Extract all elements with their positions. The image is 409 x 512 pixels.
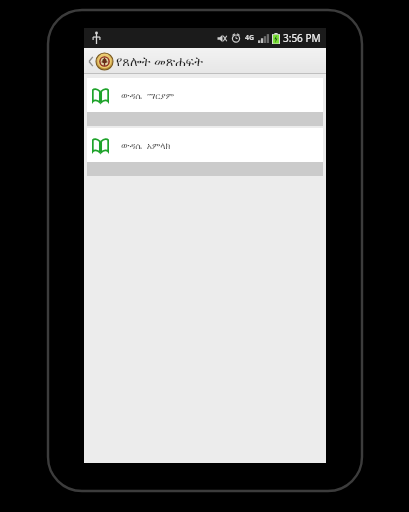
button[interactable]: Back (84, 48, 115, 74)
staticText: 3:56 PM (283, 31, 321, 45)
button[interactable]: ውዳሴ አምላክ (87, 128, 323, 162)
staticText: 4G (245, 33, 255, 43)
staticText: ውዳሴ አምላክ (121, 139, 171, 151)
staticText: የጸሎት መጽሐፍት (116, 52, 203, 70)
staticText: ውዳሴ ማርያም (121, 89, 175, 101)
button[interactable]: ውዳሴ ማርያም (87, 78, 323, 112)
